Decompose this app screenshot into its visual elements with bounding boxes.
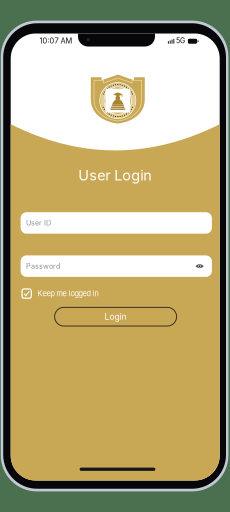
staticText: Keep me logged in (38, 289, 99, 298)
button[interactable]: Keep me logged in (22, 288, 114, 299)
staticText: User ID (26, 219, 51, 227)
staticText: Password (26, 262, 60, 270)
button[interactable]: Login (55, 307, 177, 326)
staticText: User Login (78, 167, 152, 184)
button[interactable]: Show password (192, 259, 207, 274)
staticText: 5G (176, 36, 185, 45)
staticText: 10:07 AM (40, 36, 73, 45)
staticText: Login (105, 311, 127, 322)
